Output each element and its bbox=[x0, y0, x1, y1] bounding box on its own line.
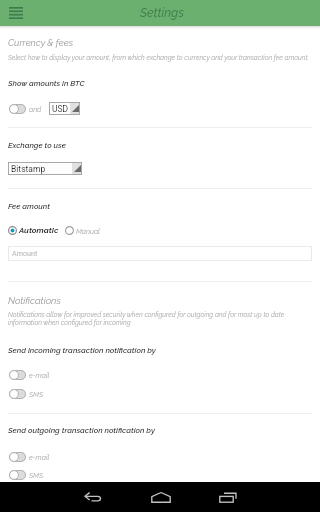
staticText: USD bbox=[52, 104, 69, 114]
button[interactable]: SMS bbox=[9, 470, 44, 480]
staticText: Select how to display your amount, from … bbox=[8, 54, 309, 62]
button[interactable]: Open navigation menu bbox=[3, 0, 29, 26]
staticText: e-mail bbox=[29, 453, 50, 461]
staticText: Fee amount bbox=[8, 202, 50, 211]
staticText: Show amounts in BTC bbox=[8, 79, 85, 88]
staticText: Manual bbox=[76, 227, 100, 235]
staticText: SMS bbox=[29, 390, 44, 398]
staticText: Bitstamp bbox=[11, 164, 46, 174]
staticText: Exchange to use bbox=[8, 141, 66, 150]
button[interactable]: Back bbox=[68, 482, 117, 512]
button[interactable]: Manual bbox=[65, 226, 100, 235]
staticText: Amount bbox=[12, 249, 38, 257]
staticText: Notifications bbox=[8, 295, 61, 306]
staticText: information when configured for incoming bbox=[8, 319, 131, 327]
button[interactable]: and bbox=[9, 104, 42, 114]
button[interactable]: Amount bbox=[8, 246, 312, 261]
button[interactable]: e-mail bbox=[9, 370, 50, 380]
button[interactable]: Recent apps bbox=[203, 482, 252, 512]
staticText: and bbox=[29, 105, 42, 113]
button[interactable]: e-mail bbox=[9, 452, 50, 462]
button[interactable]: SMS bbox=[9, 389, 44, 399]
staticText: Currency & fees bbox=[8, 37, 74, 48]
staticText: e-mail bbox=[29, 371, 50, 379]
staticText: SMS bbox=[29, 471, 44, 479]
staticText: Send outgoing transaction notification b… bbox=[8, 426, 155, 435]
button[interactable]: Home bbox=[136, 482, 185, 512]
staticText: Notifications allow for improved securit… bbox=[8, 311, 285, 319]
staticText: Automatic bbox=[19, 225, 59, 235]
button[interactable]: Automatic bbox=[8, 225, 59, 235]
button[interactable]: Bitstamp bbox=[8, 162, 82, 175]
staticText: Send incoming transaction notification b… bbox=[8, 346, 156, 355]
staticText: Settings bbox=[140, 6, 184, 20]
button[interactable]: USD bbox=[49, 102, 80, 115]
